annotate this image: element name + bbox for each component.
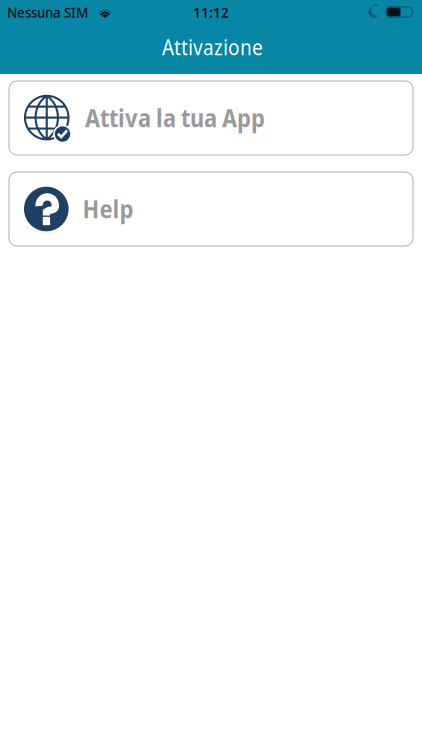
staticText: Nessuna SIM [7, 2, 88, 22]
button[interactable]: Help [9, 172, 413, 246]
staticText: Help [83, 193, 134, 225]
staticText: Attiva la tua App [85, 102, 265, 134]
staticText: 11:12 [193, 2, 229, 22]
button[interactable]: Attiva la tua App [9, 81, 413, 155]
staticText: Attivazione [162, 32, 263, 62]
